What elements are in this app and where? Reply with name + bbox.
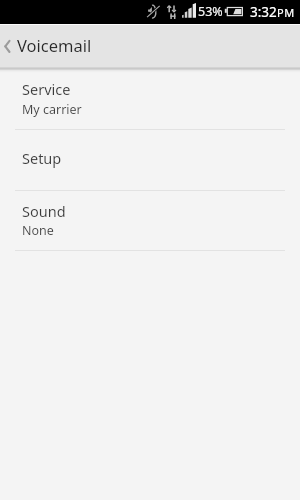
- button[interactable]: Navigate up: [0, 25, 16, 68]
- button[interactable]: Service: [0, 69, 300, 129]
- staticText: PM: [277, 5, 295, 20]
- staticText: Setup: [22, 148, 62, 168]
- staticText: None: [22, 222, 54, 239]
- staticText: My carrier: [22, 101, 82, 118]
- staticText: Voicemail: [17, 34, 92, 56]
- staticText: Sound: [22, 201, 66, 221]
- button[interactable]: Setup: [0, 130, 300, 190]
- staticText: 3:32: [250, 3, 277, 21]
- button[interactable]: Sound: [0, 191, 300, 251]
- staticText: 53%: [198, 3, 223, 20]
- staticText: Service: [22, 79, 71, 99]
